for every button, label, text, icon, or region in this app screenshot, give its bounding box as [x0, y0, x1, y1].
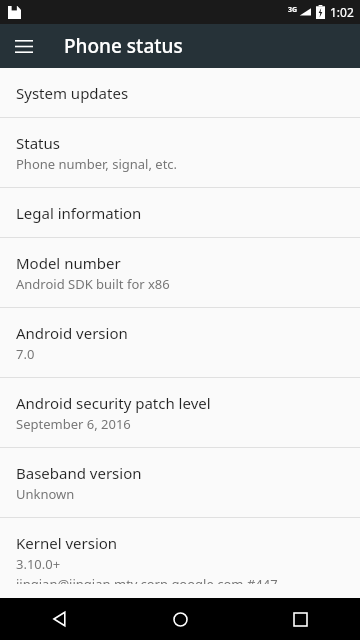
button[interactable]: System updates [0, 68, 360, 117]
button[interactable]: Back [0, 598, 120, 640]
staticText: Legal information [16, 203, 142, 223]
staticText: Android security patch level [16, 393, 211, 413]
staticText: Model number [16, 253, 121, 273]
staticText: Baseband version [16, 463, 142, 483]
staticText: Kernel version [16, 533, 118, 553]
button[interactable]: Open navigation menu [4, 26, 44, 66]
button[interactable]: Model number [0, 238, 360, 307]
staticText: Status [16, 133, 60, 153]
button[interactable]: Android version [0, 308, 360, 377]
staticText: Phone number, signal, etc. [16, 155, 178, 173]
button[interactable]: Recent apps [240, 598, 360, 640]
staticText: Unknown [16, 485, 75, 503]
staticText: September 6, 2016 [16, 415, 131, 433]
button[interactable]: Legal information [0, 188, 360, 237]
button[interactable]: Kernel version [0, 518, 360, 598]
staticText: 7.0 [16, 345, 35, 363]
staticText: jinqian@jinqian.mtv.corp.google.com #447 [16, 575, 278, 584]
staticText: 3.10.0+ [16, 555, 61, 573]
staticText: 3G [288, 5, 298, 15]
staticText: 1:02 [330, 4, 354, 20]
staticText: Android version [16, 323, 128, 343]
button[interactable]: Baseband version [0, 448, 360, 517]
staticText: Phone status [64, 33, 183, 59]
button[interactable]: Home [120, 598, 240, 640]
button[interactable]: Status [0, 118, 360, 187]
staticText: System updates [16, 83, 129, 103]
button[interactable]: Android security patch level [0, 378, 360, 447]
staticText: Android SDK built for x86 [16, 275, 170, 293]
